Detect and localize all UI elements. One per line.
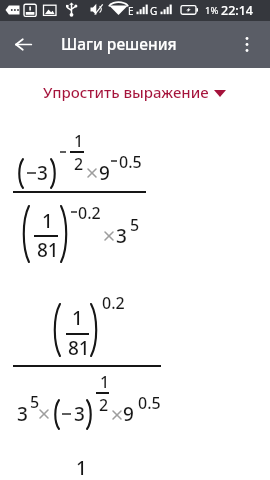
staticText: 3 bbox=[74, 401, 85, 427]
staticText: 3 bbox=[17, 401, 28, 427]
staticText: 2 bbox=[99, 394, 109, 416]
staticText: 5 bbox=[130, 214, 140, 236]
staticText: G bbox=[150, 4, 158, 18]
staticText: 81 bbox=[37, 237, 59, 263]
staticText: 0.5 bbox=[119, 151, 142, 173]
staticText: 0.2 bbox=[78, 202, 101, 224]
button[interactable]: More options bbox=[223, 21, 270, 68]
staticText: 1 bbox=[72, 305, 83, 331]
staticText: 9 bbox=[123, 401, 134, 427]
staticText: 1 bbox=[74, 130, 84, 152]
staticText: 2 bbox=[74, 153, 84, 175]
button[interactable]: Back bbox=[0, 21, 47, 68]
staticText: 5 bbox=[30, 391, 40, 413]
staticText: 3 bbox=[116, 223, 127, 249]
staticText: 22:14 bbox=[221, 2, 254, 19]
staticText: 1 bbox=[76, 455, 87, 480]
staticText: 1% bbox=[205, 4, 219, 17]
staticText: 3 bbox=[37, 160, 48, 186]
staticText: Шаги решения bbox=[61, 33, 177, 54]
staticText: Упростить выражение bbox=[43, 82, 209, 102]
staticText: 9 bbox=[99, 160, 110, 186]
staticText: 0.5 bbox=[138, 392, 161, 414]
button[interactable]: Упростить выражение bbox=[35, 77, 234, 109]
staticText: 1 bbox=[42, 208, 53, 234]
staticText: 1 bbox=[100, 371, 110, 393]
staticText: E bbox=[128, 4, 134, 18]
staticText: 81 bbox=[68, 335, 90, 361]
staticText: 0.2 bbox=[102, 292, 125, 314]
